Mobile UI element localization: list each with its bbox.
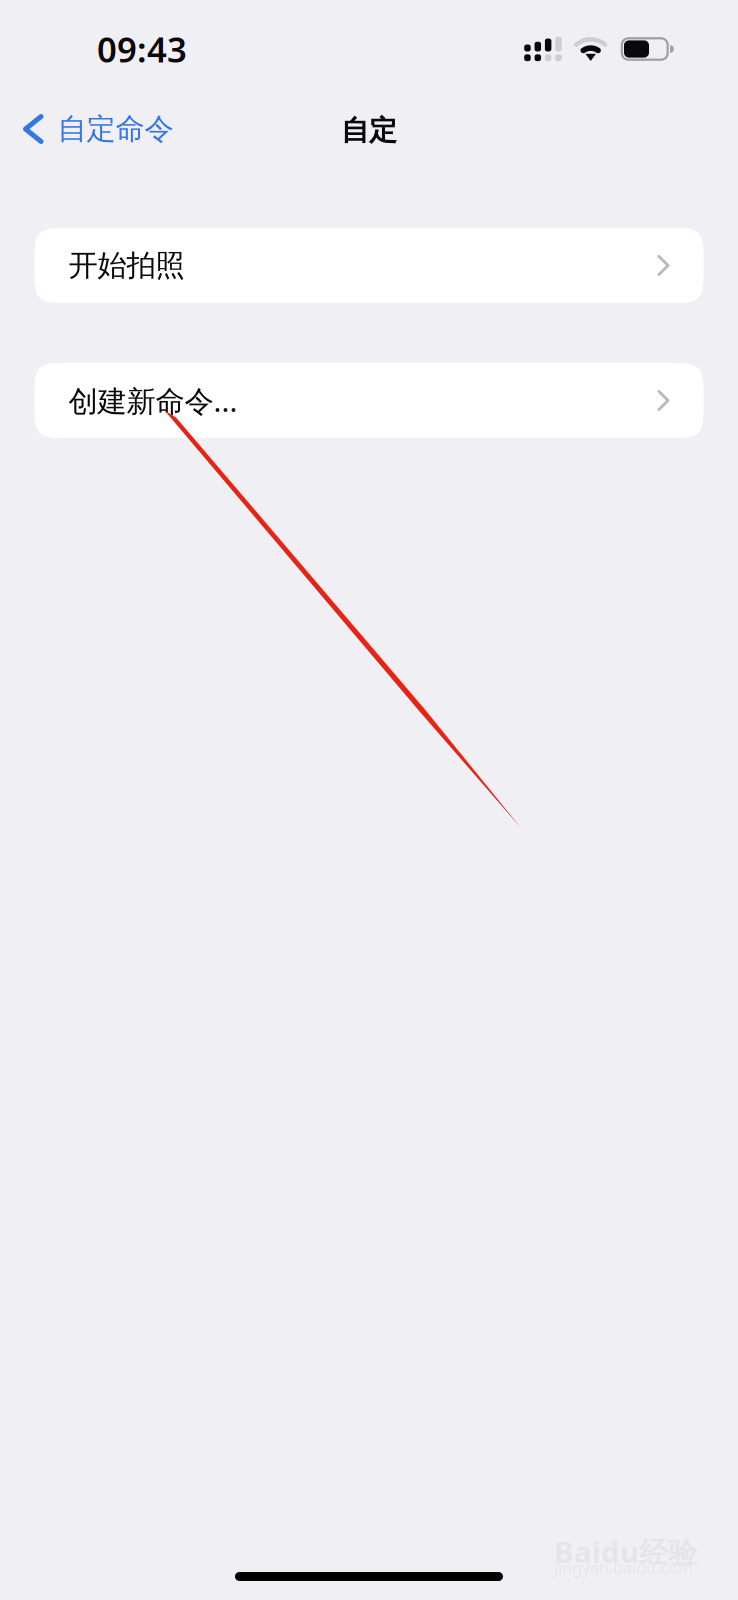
button[interactable]: 自定命令 xyxy=(0,98,187,160)
staticText: 开始拍照 xyxy=(68,247,184,283)
staticText: jingyan.baidu.com xyxy=(554,1557,693,1578)
staticText: 自定 xyxy=(341,113,397,148)
button[interactable]: 开始拍照 xyxy=(34,228,703,303)
button[interactable]: 创建新命令... xyxy=(34,363,703,438)
staticText: 09:43 xyxy=(97,26,187,72)
staticText: Baidu经验 xyxy=(554,1532,697,1571)
staticText: 自定命令 xyxy=(57,111,173,147)
staticText: 创建新命令... xyxy=(68,381,237,420)
